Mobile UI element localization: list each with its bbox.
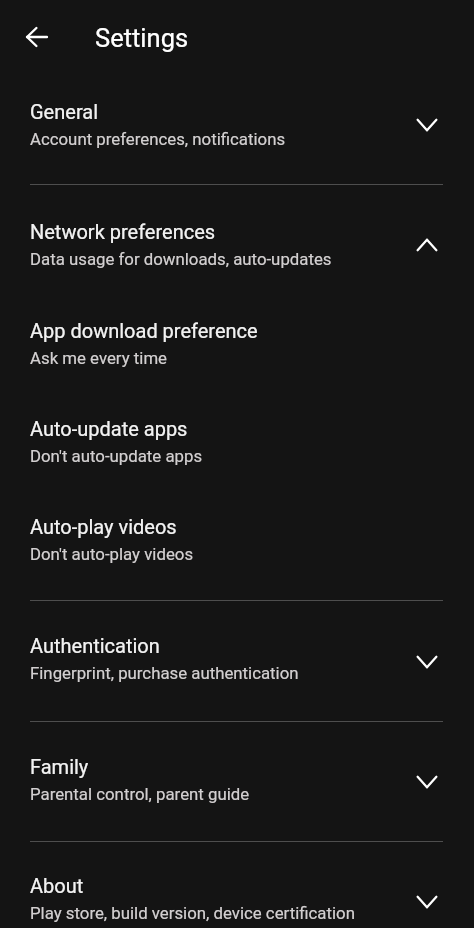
button[interactable]: Authentication (0, 608, 474, 721)
button[interactable]: General (0, 76, 474, 184)
other: Collapse Network preferences (414, 232, 440, 258)
staticText: Data usage for downloads, auto-updates (30, 249, 332, 269)
button[interactable]: Auto-update apps (0, 391, 474, 494)
other: Expand Authentication (414, 649, 440, 675)
staticText: Family (30, 755, 89, 778)
staticText: Fingerprint, purchase authentication (30, 663, 299, 683)
staticText: General (30, 100, 99, 123)
staticText: About (30, 874, 84, 897)
button[interactable]: Network preferences (0, 194, 474, 298)
staticText: Ask me every time (30, 348, 168, 368)
staticText: App download preference (30, 319, 258, 342)
button[interactable]: Family (0, 729, 474, 841)
staticText: Authentication (30, 634, 160, 657)
staticText: Account preferences, notifications (30, 129, 286, 149)
staticText: Settings (95, 23, 189, 53)
other: Expand About (414, 889, 440, 915)
staticText: Auto-update apps (30, 417, 188, 440)
staticText: Network preferences (30, 220, 216, 243)
other: Expand Family (414, 769, 440, 795)
staticText: Play store, build version, device certif… (30, 903, 355, 923)
staticText: Don't auto-update apps (30, 446, 203, 466)
staticText: Auto-play videos (30, 515, 177, 538)
button[interactable]: About (0, 848, 474, 928)
button[interactable]: Auto-play videos (0, 489, 474, 600)
staticText: Don't auto-play videos (30, 544, 194, 564)
button[interactable]: Back (13, 13, 61, 61)
button[interactable]: App download preference (0, 293, 474, 396)
other: Expand General (414, 112, 440, 138)
staticText: Parental control, parent guide (30, 784, 250, 804)
